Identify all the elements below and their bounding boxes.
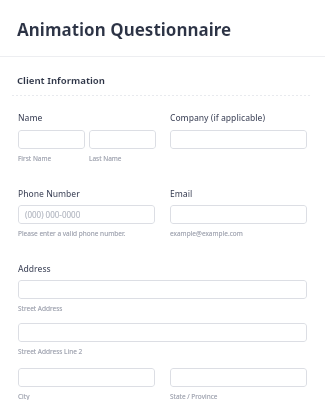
- staticText: State / Province: [170, 392, 218, 400]
- button[interactable]: [18, 368, 155, 387]
- staticText: Client Information: [17, 74, 105, 87]
- button[interactable]: [170, 205, 307, 224]
- button[interactable]: [18, 130, 85, 149]
- button[interactable]: (000) 000-0000: [18, 205, 155, 224]
- staticText: Name: [18, 112, 43, 124]
- staticText: example@example.com: [170, 229, 243, 238]
- staticText: Last Name: [89, 154, 122, 163]
- button[interactable]: [170, 130, 307, 149]
- staticText: Street Address Line 2: [18, 347, 83, 356]
- button[interactable]: [89, 130, 156, 149]
- staticText: Street Address: [18, 304, 63, 313]
- button[interactable]: [170, 368, 307, 387]
- staticText: Company (if applicable): [170, 112, 266, 124]
- staticText: Address: [18, 263, 51, 275]
- button[interactable]: [18, 280, 307, 299]
- staticText: Email: [170, 188, 193, 200]
- staticText: Please enter a valid phone number.: [18, 229, 126, 238]
- staticText: Phone Number: [18, 188, 80, 200]
- staticText: (000) 000-0000: [25, 209, 81, 220]
- button[interactable]: [18, 323, 307, 342]
- staticText: First Name: [18, 154, 52, 163]
- staticText: City: [18, 392, 30, 400]
- staticText: Animation Questionnaire: [17, 18, 232, 41]
